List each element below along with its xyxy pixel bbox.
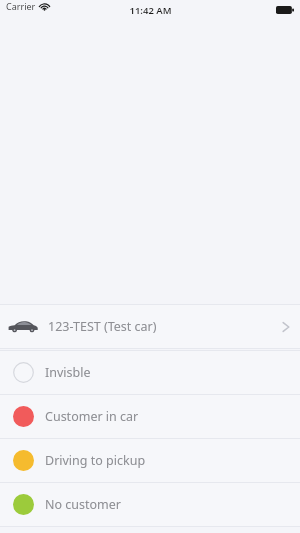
- button[interactable]: No customer: [0, 483, 300, 526]
- staticText: No customer: [45, 496, 122, 513]
- staticText: Driving to pickup: [45, 452, 146, 469]
- button[interactable]: Driving to pickup: [0, 439, 300, 482]
- other: Open car details: [282, 320, 290, 334]
- button[interactable]: Invisble: [0, 351, 300, 394]
- staticText: 123-TEST (Test car): [48, 318, 157, 335]
- staticText: 11:42 AM: [129, 4, 172, 17]
- staticText: Customer in car: [45, 408, 139, 425]
- staticText: Carrier: [6, 0, 36, 12]
- button[interactable]: Customer in car: [0, 395, 300, 438]
- staticText: Invisble: [45, 364, 91, 381]
- button[interactable]: 123-TEST (Test car): [0, 305, 300, 348]
